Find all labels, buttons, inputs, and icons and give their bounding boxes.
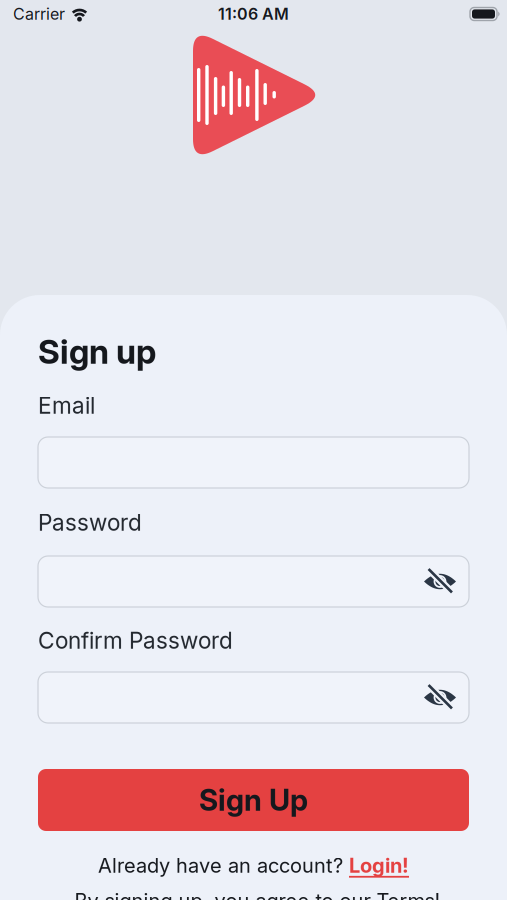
staticText: Sign up: [38, 332, 156, 371]
staticText: By signing up, you agree to our Terms!: [74, 889, 440, 900]
button[interactable]: Sign Up: [38, 769, 469, 831]
staticText: Carrier: [13, 5, 65, 23]
staticText: Email: [38, 392, 95, 419]
staticText: Already have an account?: [98, 854, 349, 877]
button[interactable]: Show password: [423, 684, 457, 710]
staticText: Password: [38, 509, 142, 536]
button[interactable]: Login!: [349, 854, 409, 877]
staticText: Confirm Password: [38, 627, 233, 654]
staticText: Sign Up: [199, 783, 308, 817]
staticText: Login!: [349, 854, 409, 877]
staticText: 11:06 AM: [218, 5, 289, 23]
button[interactable]: Show password: [423, 568, 457, 594]
